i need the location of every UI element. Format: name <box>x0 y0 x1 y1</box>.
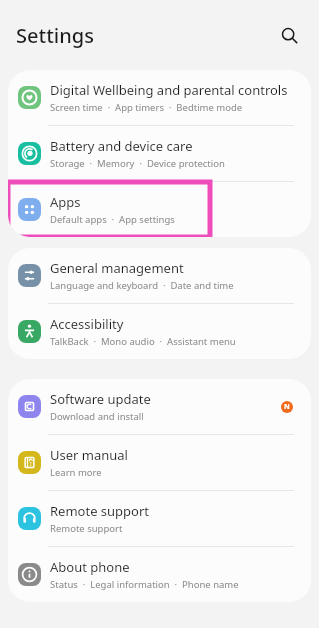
button[interactable]: Search <box>273 19 305 51</box>
staticText: Learn more <box>50 466 102 479</box>
button[interactable]: About phone <box>8 547 311 602</box>
staticText: Language and keyboard · Date and time <box>50 279 234 292</box>
staticText: User manual <box>50 446 128 464</box>
button[interactable]: Software update <box>8 379 311 434</box>
staticText: N <box>284 402 290 412</box>
staticText: Download and install <box>50 410 144 423</box>
staticText: General management <box>50 259 184 277</box>
staticText: TalkBack · Mono audio · Assistant menu <box>50 335 236 348</box>
staticText: Screen time · App timers · Bedtime mode <box>50 101 243 114</box>
button[interactable]: Apps <box>8 182 311 237</box>
staticText: Remote support <box>50 522 123 535</box>
button[interactable]: User manual <box>8 435 311 490</box>
button[interactable]: Digital Wellbeing and parental controls <box>8 70 311 125</box>
button[interactable]: Remote support <box>8 491 311 546</box>
button[interactable]: Accessibility <box>8 304 311 359</box>
staticText: Digital Wellbeing and parental controls <box>50 81 288 99</box>
staticText: Settings <box>16 22 94 49</box>
staticText: Storage · Memory · Device protection <box>50 157 225 170</box>
button[interactable]: Battery and device care <box>8 126 311 181</box>
staticText: Apps <box>50 193 81 211</box>
staticText: About phone <box>50 558 130 576</box>
button[interactable]: General management <box>8 248 311 303</box>
staticText: Software update <box>50 390 151 408</box>
staticText: Accessibility <box>50 315 124 333</box>
staticText: Battery and device care <box>50 137 193 155</box>
staticText: Status · Legal information · Phone name <box>50 578 239 591</box>
staticText: Remote support <box>50 502 150 520</box>
staticText: Default apps · App settings <box>50 213 175 226</box>
